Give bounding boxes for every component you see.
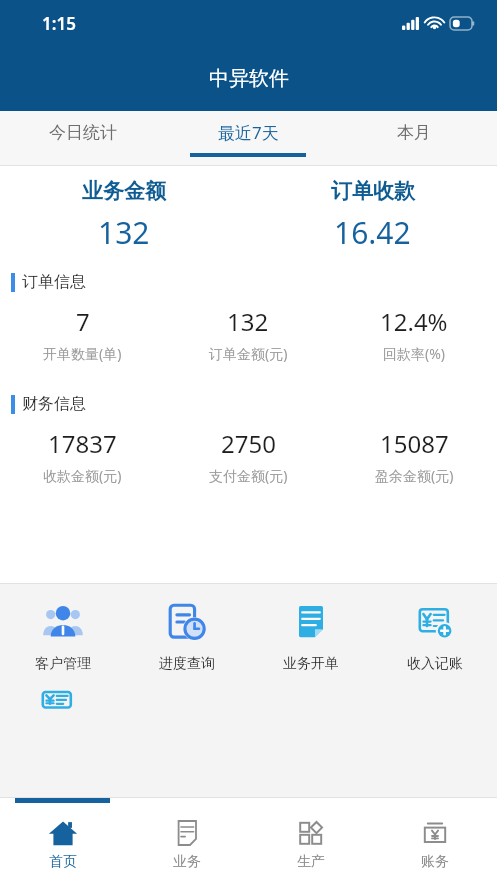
- staticText: 17837: [48, 427, 117, 460]
- staticText: 财务信息: [22, 394, 86, 414]
- button[interactable]: 生产: [249, 803, 373, 883]
- staticText: 收款金额(元): [43, 466, 122, 485]
- staticText: 业务金额: [82, 178, 166, 204]
- staticText: 今日统计: [49, 122, 117, 143]
- button[interactable]: 首页: [0, 803, 125, 883]
- staticText: 业务: [173, 853, 201, 871]
- staticText: 本月: [397, 122, 431, 143]
- staticText: 7: [76, 305, 90, 338]
- staticText: 16.42: [334, 212, 411, 253]
- button[interactable]: 账务: [373, 803, 497, 883]
- staticText: 15087: [380, 427, 449, 460]
- button[interactable]: 客户管理: [0, 596, 125, 675]
- button[interactable]: 最近7天: [165, 111, 331, 166]
- staticText: 收入记账: [407, 655, 463, 673]
- staticText: 最近7天: [218, 121, 279, 144]
- button[interactable]: 今日统计: [0, 111, 165, 166]
- button[interactable]: 业务: [125, 803, 249, 883]
- staticText: 生产: [297, 853, 325, 871]
- staticText: 账务: [421, 853, 449, 871]
- staticText: 1:15: [42, 12, 76, 35]
- button[interactable]: 记账: [38, 687, 86, 715]
- button[interactable]: 本月: [331, 111, 497, 166]
- staticText: 进度查询: [159, 655, 215, 673]
- staticText: 回款率(%): [383, 344, 446, 363]
- staticText: 订单收款: [331, 178, 415, 204]
- staticText: 12.4%: [380, 305, 448, 338]
- staticText: 支付金额(元): [209, 466, 288, 485]
- staticText: 132: [98, 212, 150, 253]
- button[interactable]: 收入记账: [373, 596, 497, 675]
- staticText: 中异软件: [209, 66, 289, 91]
- staticText: 业务开单: [283, 655, 339, 673]
- button[interactable]: 进度查询: [125, 596, 249, 675]
- staticText: 开单数量(单): [43, 344, 122, 363]
- staticText: 首页: [49, 853, 77, 871]
- button[interactable]: 业务开单: [249, 596, 373, 675]
- staticText: 订单信息: [22, 272, 86, 292]
- staticText: 132: [227, 305, 269, 338]
- staticText: 盈余金额(元): [375, 466, 454, 485]
- staticText: 2750: [221, 427, 276, 460]
- staticText: 订单金额(元): [209, 344, 288, 363]
- staticText: 客户管理: [35, 655, 91, 673]
